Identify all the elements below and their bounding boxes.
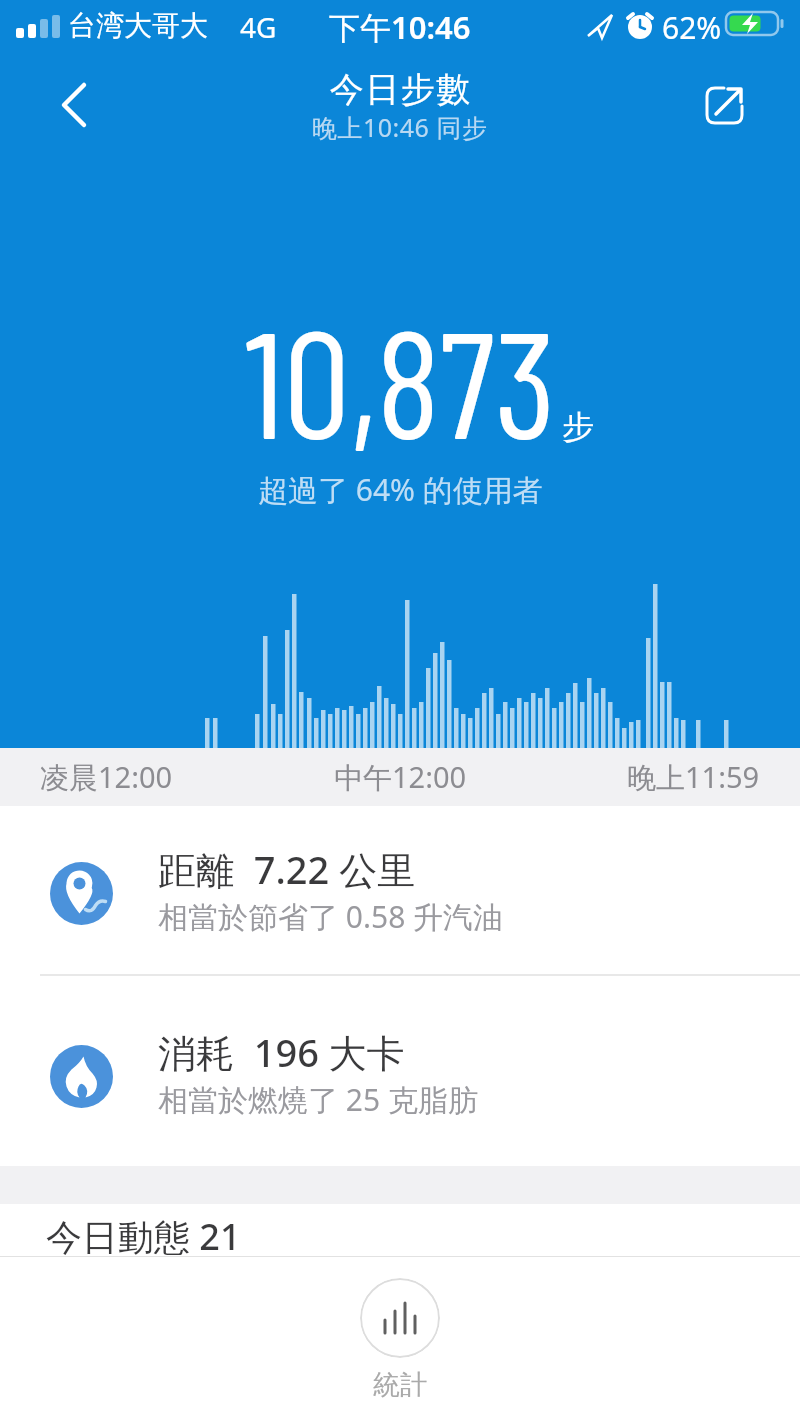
button[interactable]: [360, 1278, 440, 1358]
button[interactable]: 消耗 196 大卡: [0, 1007, 800, 1139]
staticText: 4G: [240, 8, 277, 46]
button[interactable]: 距離 7.22 公里: [0, 824, 800, 956]
staticText: 62%: [662, 7, 722, 48]
staticText: 步: [562, 407, 594, 447]
staticText: 台湾大哥大: [68, 8, 208, 43]
staticText: 超過了 64% 的使用者: [258, 469, 543, 510]
button[interactable]: [50, 75, 100, 135]
staticText: 下午10:46: [329, 6, 471, 48]
staticText: 今日動態 21: [46, 1212, 241, 1261]
staticText: 凌晨12:00: [40, 757, 173, 797]
staticText: 消耗 196 大卡: [158, 1026, 405, 1078]
staticText: 中午12:00: [334, 757, 467, 797]
staticText: 相當於節省了 0.58 升汽油: [158, 896, 504, 937]
staticText: 相當於燃燒了 25 克脂肪: [158, 1079, 478, 1120]
staticText: 晚上11:59: [627, 757, 760, 797]
staticText: 晚上10:46 同步: [312, 110, 488, 144]
staticText: 10,873: [245, 289, 556, 469]
staticText: 今日步數: [329, 68, 471, 111]
button[interactable]: [695, 78, 755, 134]
staticText: 統計: [373, 1368, 427, 1402]
staticText: 距離 7.22 公里: [158, 843, 416, 895]
